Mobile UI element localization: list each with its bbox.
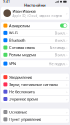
staticText: 9:41 <box>3 0 10 3</box>
staticText: Авиарежим <box>9 23 30 28</box>
staticText: Выкл. <box>54 52 65 57</box>
staticText: Сотовая связь <box>9 45 35 50</box>
button[interactable]: Уведомления <box>1 74 69 81</box>
staticText: Экранное время <box>9 96 38 102</box>
button[interactable]: Wi-Fi <box>1 29 69 36</box>
staticText: Звуки, тактильные сигналы <box>9 82 58 87</box>
staticText: › <box>66 45 67 50</box>
staticText: › <box>66 74 67 80</box>
staticText: › <box>66 10 67 16</box>
staticText: › <box>66 82 67 87</box>
staticText: Wi-Fi <box>9 30 18 35</box>
button[interactable]: Bluetooth <box>1 37 69 44</box>
staticText: VPN <box>9 61 16 66</box>
staticText: Выкл. <box>54 37 65 43</box>
button[interactable]: Не беспокоить <box>1 88 69 95</box>
staticText: › <box>66 96 67 102</box>
staticText: Bluetooth <box>9 37 25 43</box>
button[interactable]: Иван Иванов <box>1 7 69 20</box>
staticText: › <box>66 61 67 66</box>
staticText: Пункт управления <box>9 117 41 122</box>
staticText: Выкл. <box>54 30 65 35</box>
staticText: › <box>66 37 67 43</box>
button[interactable]: Экранное время <box>1 95 69 102</box>
staticText: Режим модема <box>9 52 36 57</box>
staticText: Не беспокоить <box>9 89 35 94</box>
button[interactable]: VPN <box>1 60 69 67</box>
staticText: › <box>66 109 67 115</box>
staticText: Apple ID, iCloud, Медиа и покупки <box>12 14 62 18</box>
staticText: Активир. <box>49 45 65 50</box>
staticText: Не подкл. <box>48 61 65 66</box>
button[interactable]: Основные <box>1 108 69 115</box>
button[interactable]: Пункт управления <box>1 116 69 123</box>
staticText: Иван Иванов <box>12 9 35 14</box>
button[interactable]: Сотовая связь <box>1 44 69 51</box>
staticText: › <box>66 89 67 94</box>
button[interactable]: Авиарежим <box>1 22 69 29</box>
staticText: › <box>66 117 67 122</box>
staticText: Настройки <box>24 2 46 8</box>
staticText: › <box>66 30 67 35</box>
button[interactable]: Звуки, тактильные сигналы <box>1 81 69 88</box>
button[interactable]: Режим модема <box>1 51 69 58</box>
staticText: Уведомления <box>9 74 32 80</box>
staticText: › <box>66 52 67 57</box>
staticText: Основные <box>9 109 27 115</box>
